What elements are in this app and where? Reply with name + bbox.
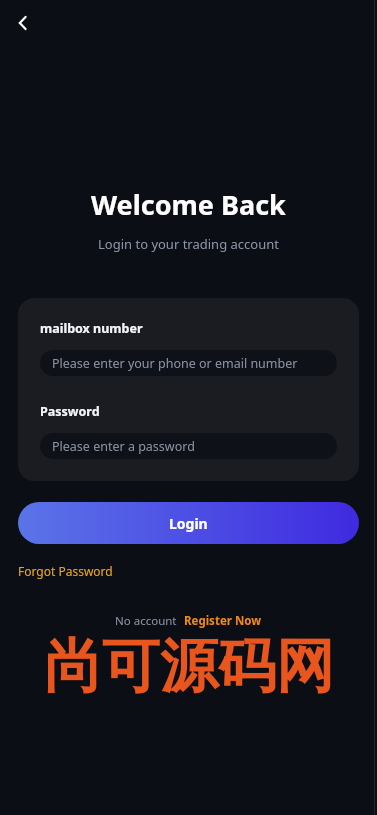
button[interactable]: Please enter a password <box>40 433 337 459</box>
button[interactable]: Please enter your phone or email number <box>40 350 337 376</box>
staticText: Register Now <box>184 613 262 629</box>
staticText: Password <box>40 403 100 420</box>
button[interactable]: Back <box>6 6 40 40</box>
staticText: Please enter your phone or email number <box>52 355 298 372</box>
button[interactable]: Register Now <box>184 613 262 629</box>
staticText: Login to your trading account <box>98 235 279 253</box>
staticText: Login <box>169 514 208 533</box>
staticText: Welcome Back <box>91 186 286 223</box>
button[interactable]: Forgot Password <box>18 561 113 581</box>
staticText: mailbox number <box>40 320 143 337</box>
staticText: No account <box>115 613 177 629</box>
staticText: Please enter a password <box>52 438 195 455</box>
staticText: Forgot Password <box>18 563 113 579</box>
button[interactable]: Login <box>18 502 359 544</box>
staticText: 尚可源码网 <box>44 630 334 703</box>
